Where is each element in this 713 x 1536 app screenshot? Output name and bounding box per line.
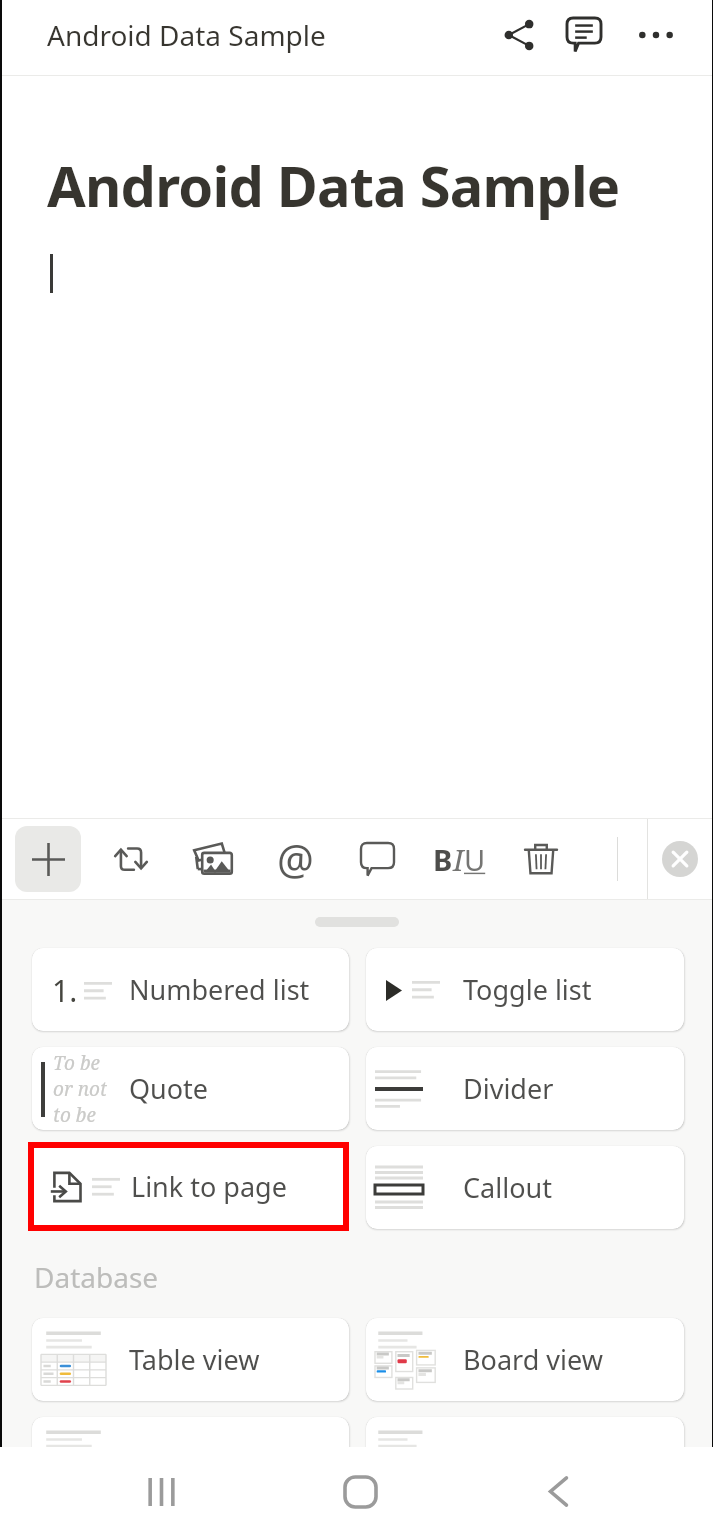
button[interactable]: Gallery view xyxy=(366,1417,684,1500)
staticText: Numbered list xyxy=(129,971,310,1008)
button[interactable]: To be xyxy=(32,1047,349,1130)
button[interactable]: Mention xyxy=(254,818,336,900)
button[interactable]: Table view xyxy=(32,1318,349,1401)
staticText: I xyxy=(453,840,464,879)
staticText: To be xyxy=(53,1050,100,1076)
staticText: @ xyxy=(277,831,314,887)
staticText: Quote xyxy=(129,1070,209,1107)
button[interactable]: Image xyxy=(172,818,254,900)
staticText: Database xyxy=(34,1258,159,1296)
button[interactable]: Divider xyxy=(366,1047,684,1130)
staticText: Toggle list xyxy=(463,971,592,1008)
button[interactable]: Board view xyxy=(366,1318,684,1401)
staticText: Android Data Sample xyxy=(47,147,620,223)
button[interactable]: Format xyxy=(418,818,500,900)
button[interactable]: Comments xyxy=(556,7,612,63)
staticText: U xyxy=(464,840,486,879)
staticText: Link to page xyxy=(131,1168,287,1205)
staticText: or not xyxy=(53,1076,108,1102)
button[interactable]: Toggle list xyxy=(366,948,684,1031)
button[interactable]: Callout xyxy=(366,1146,684,1229)
staticText: Table view xyxy=(129,1341,260,1378)
staticText: Android Data Sample xyxy=(47,16,326,54)
staticText: 1. xyxy=(52,970,78,1011)
button[interactable]: Close xyxy=(648,818,712,900)
button[interactable]: Move xyxy=(90,818,172,900)
button[interactable]: List view xyxy=(32,1417,349,1500)
button[interactable]: Home xyxy=(315,1447,405,1536)
button[interactable]: Back xyxy=(513,1447,603,1536)
staticText: B xyxy=(433,840,453,879)
staticText: Board view xyxy=(463,1341,603,1378)
button[interactable]: More options xyxy=(628,7,684,63)
button[interactable]: Comment xyxy=(336,818,418,900)
staticText: Divider xyxy=(463,1070,554,1107)
button[interactable]: 1. xyxy=(32,948,349,1031)
staticText: Callout xyxy=(463,1169,552,1206)
button[interactable]: Add block xyxy=(15,826,81,892)
button[interactable]: Link to page xyxy=(34,1148,343,1225)
button[interactable]: Recents xyxy=(116,1447,206,1536)
button[interactable]: Share xyxy=(491,7,547,63)
button[interactable]: Delete xyxy=(500,818,582,900)
staticText: to be xyxy=(53,1102,96,1128)
